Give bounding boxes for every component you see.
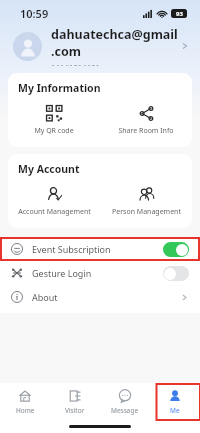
staticText: Me (170, 406, 180, 415)
staticText: Home (16, 406, 35, 415)
other: Account details (180, 41, 190, 51)
button[interactable]: Account Management (8, 184, 100, 219)
staticText: Account Management (18, 207, 91, 217)
button[interactable]: Toggle on (163, 242, 189, 257)
staticText: Message (111, 406, 139, 415)
staticText: My Information (18, 81, 101, 95)
staticText: My Account (18, 162, 80, 176)
button[interactable]: Person Management (100, 184, 192, 219)
button[interactable]: Me (150, 383, 200, 421)
button[interactable]: Share Room Info (100, 103, 192, 138)
button[interactable]: Home (0, 383, 50, 421)
button[interactable]: Gesture Login (0, 261, 200, 285)
button[interactable]: dahuatechca@gmail.com (0, 26, 200, 66)
other: Open (180, 293, 189, 302)
button[interactable]: Event Subscription (0, 237, 200, 261)
staticText: 1#1#101#101 (51, 62, 100, 66)
staticText: Share Room Info (118, 126, 174, 136)
button[interactable]: My QR code (8, 103, 100, 138)
staticText: Person Management (112, 207, 181, 217)
button[interactable]: About (0, 285, 200, 309)
button[interactable]: Toggle off (163, 266, 189, 281)
staticText: Event Subscription (32, 243, 163, 255)
button[interactable]: Message (100, 383, 150, 421)
staticText: About (32, 291, 180, 303)
staticText: dahuatechca@gmail.com (51, 26, 180, 60)
staticText: 93 (176, 10, 183, 18)
staticText: My QR code (34, 126, 74, 136)
button[interactable]: Visitor (50, 383, 100, 421)
staticText: 10:59 (20, 6, 49, 21)
staticText: Gesture Login (32, 267, 163, 279)
staticText: Visitor (65, 406, 85, 415)
